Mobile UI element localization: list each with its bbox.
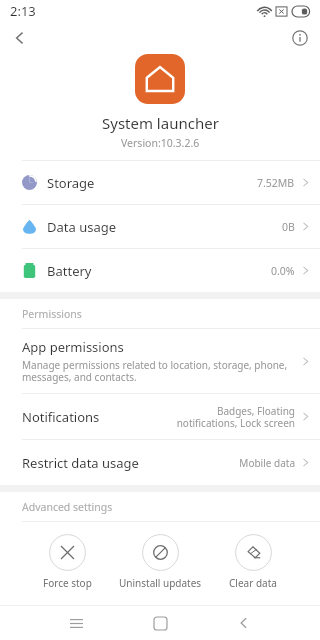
button[interactable]: Restrict data usage: [0, 440, 320, 485]
staticText: Force stop: [43, 576, 92, 590]
staticText: Manage permissions related to location, …: [22, 358, 288, 384]
staticText: System launcher: [102, 113, 219, 133]
staticText: Clear data: [229, 576, 277, 590]
button[interactable]: Home: [143, 606, 177, 640]
button[interactable]: Force stop: [41, 534, 94, 590]
staticText: App permissions: [22, 338, 124, 356]
staticText: 0B: [282, 220, 295, 234]
staticText: Battery: [47, 262, 271, 280]
staticText: Uninstall updates: [119, 576, 202, 590]
staticText: 0.0%: [271, 264, 295, 278]
staticText: Storage: [47, 174, 257, 192]
staticText: Restrict data usage: [22, 454, 239, 472]
button[interactable]: Back: [227, 606, 261, 640]
staticText: Badges, Floating notifications, Lock scr…: [176, 404, 295, 430]
staticText: 2:13: [10, 2, 36, 20]
button[interactable]: Clear data: [227, 534, 279, 590]
staticText: Advanced settings: [22, 500, 113, 514]
staticText: Notifications: [22, 408, 176, 426]
button[interactable]: Back: [0, 22, 40, 54]
button[interactable]: Data usage: [0, 205, 320, 248]
staticText: 7.52MB: [257, 176, 295, 190]
button[interactable]: App info: [280, 22, 320, 54]
staticText: Mobile data: [239, 456, 295, 470]
button[interactable]: Notifications: [0, 394, 320, 439]
staticText: Permissions: [22, 307, 82, 321]
button[interactable]: Battery: [0, 249, 320, 292]
button[interactable]: Uninstall updates: [117, 534, 204, 590]
button[interactable]: App permissions: [0, 329, 320, 393]
staticText: Data usage: [47, 218, 282, 236]
staticText: Version:10.3.2.6: [121, 136, 200, 150]
button[interactable]: Storage: [0, 161, 320, 204]
button[interactable]: Recents: [59, 606, 93, 640]
